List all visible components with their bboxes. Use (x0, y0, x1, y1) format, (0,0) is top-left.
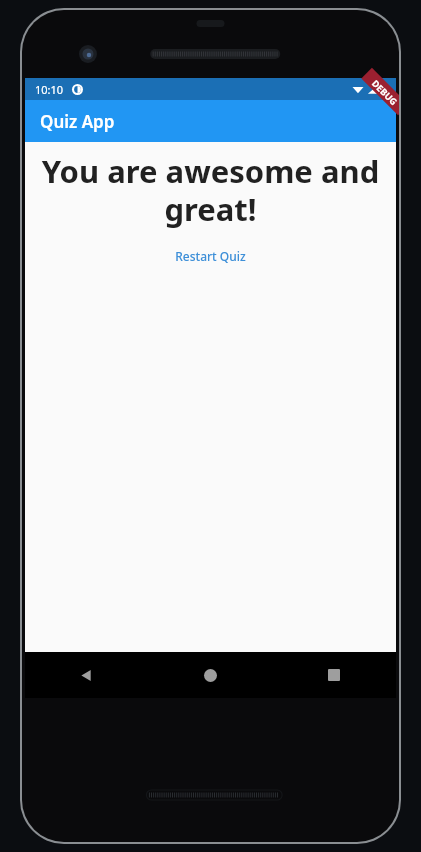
staticText: DEBUG (370, 77, 399, 107)
button[interactable]: Recent apps (272, 652, 396, 698)
staticText: Restart Quiz (175, 248, 246, 264)
button[interactable]: Home (148, 652, 272, 698)
staticText: Quiz App (40, 110, 115, 133)
button[interactable]: Restart Quiz (165, 244, 256, 268)
staticText: You are awesome and great! (37, 150, 384, 230)
button[interactable]: Back (25, 652, 148, 698)
staticText: 10:10 (35, 82, 64, 97)
